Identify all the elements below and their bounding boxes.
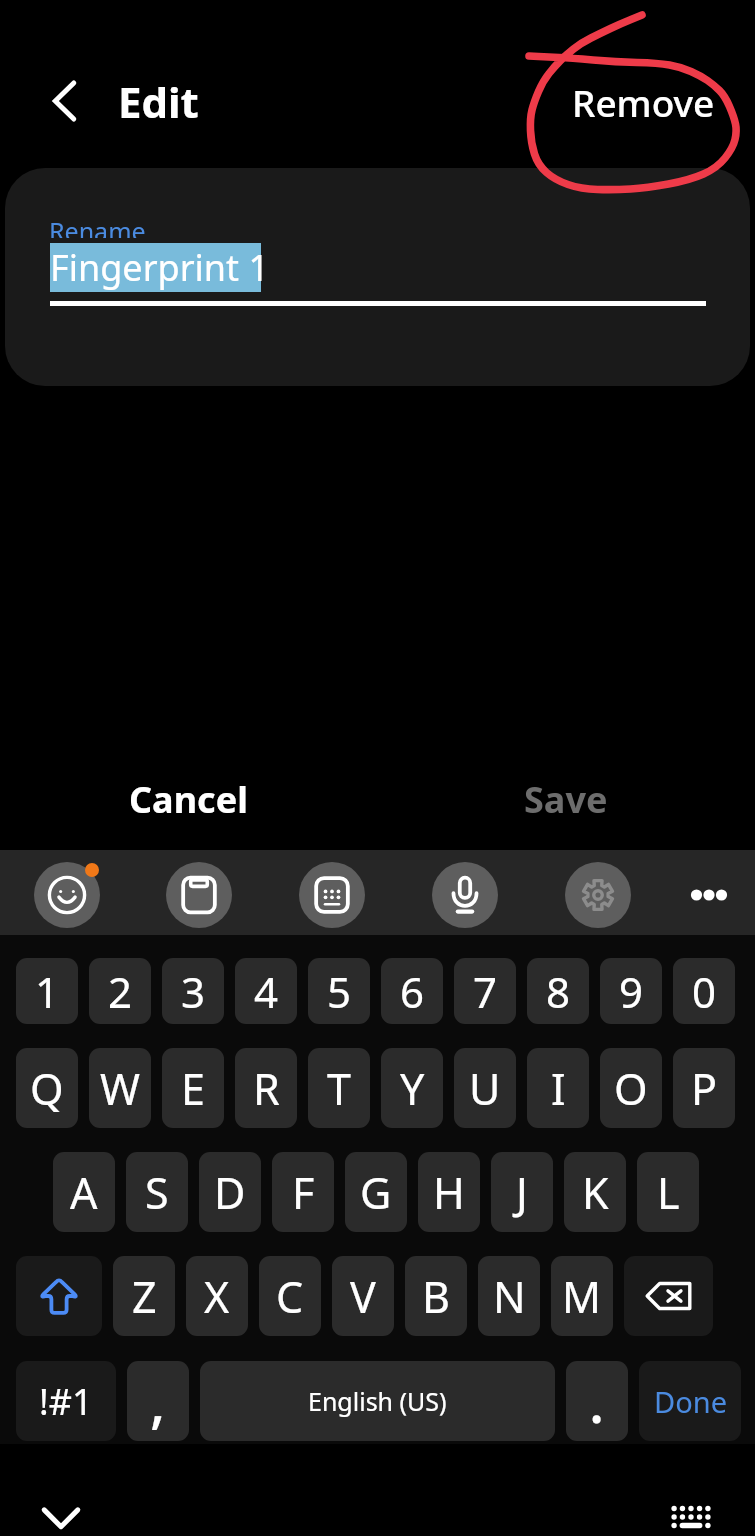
button[interactable]: D [199, 1152, 261, 1232]
button[interactable]: W [89, 1048, 151, 1128]
button[interactable]: I [527, 1048, 589, 1128]
button[interactable]: Switch keyboard [672, 1506, 710, 1536]
staticText: A [70, 1163, 98, 1222]
staticText: Y [400, 1059, 425, 1118]
button[interactable]: 8 [527, 958, 589, 1024]
button[interactable]: N [478, 1256, 540, 1336]
button[interactable]: K [564, 1152, 626, 1232]
button[interactable]: Save [377, 758, 755, 840]
button[interactable]: E [162, 1048, 224, 1128]
button[interactable]: S [126, 1152, 188, 1232]
button[interactable]: V [332, 1256, 394, 1336]
button[interactable]: X [186, 1256, 248, 1336]
staticText: U [469, 1059, 501, 1118]
staticText: B [422, 1267, 450, 1326]
staticText: 9 [619, 963, 644, 1020]
staticText: 0 [692, 963, 717, 1020]
button[interactable]: Q [16, 1048, 78, 1128]
button[interactable]: 0 [673, 958, 735, 1024]
staticText: P [691, 1059, 718, 1118]
staticText: 5 [327, 963, 352, 1020]
button[interactable]: 5 [308, 958, 370, 1024]
button[interactable]: H [418, 1152, 480, 1232]
staticText: E [181, 1059, 205, 1118]
button[interactable]: B [405, 1256, 467, 1336]
staticText: . [589, 1363, 605, 1439]
button[interactable]: A [53, 1152, 115, 1232]
button[interactable]: . [566, 1361, 628, 1441]
button[interactable]: Back [43, 79, 87, 123]
staticText: 6 [400, 963, 425, 1020]
staticText: L [657, 1163, 680, 1222]
staticText: Edit [118, 73, 199, 130]
button[interactable]: Clipboard [166, 862, 232, 928]
button[interactable]: Emoji [34, 862, 100, 928]
button[interactable]: 4 [235, 958, 297, 1024]
button[interactable]: T [308, 1048, 370, 1128]
button[interactable]: Hide keyboard [34, 1490, 88, 1536]
button[interactable]: G [345, 1152, 407, 1232]
button[interactable]: 3 [162, 958, 224, 1024]
button[interactable]: Done [639, 1361, 741, 1441]
staticText: Rename [49, 214, 146, 238]
button[interactable]: P [673, 1048, 735, 1128]
staticText: Cancel [129, 775, 248, 824]
button[interactable]: J [491, 1152, 553, 1232]
staticText: Save [524, 775, 608, 824]
button[interactable]: Z [113, 1256, 175, 1336]
staticText: 7 [473, 963, 498, 1020]
button[interactable]: Shift [16, 1256, 102, 1336]
button[interactable]: O [600, 1048, 662, 1128]
staticText: Q [30, 1059, 64, 1118]
staticText: 8 [546, 963, 571, 1020]
staticText: K [582, 1163, 609, 1222]
button[interactable]: 6 [381, 958, 443, 1024]
button[interactable]: C [259, 1256, 321, 1336]
staticText: S [145, 1163, 169, 1222]
staticText: 4 [254, 963, 279, 1020]
staticText: H [433, 1163, 465, 1222]
button[interactable]: !#1 [16, 1361, 116, 1441]
staticText: V [350, 1267, 376, 1326]
staticText: 3 [181, 963, 206, 1020]
button[interactable]: U [454, 1048, 516, 1128]
staticText: X [204, 1267, 230, 1326]
button[interactable]: , [127, 1361, 189, 1441]
staticText: Done [654, 1382, 727, 1421]
staticText: English (US) [308, 1384, 447, 1418]
button[interactable]: 1 [16, 958, 78, 1024]
button[interactable]: M [551, 1256, 613, 1336]
button[interactable]: Y [381, 1048, 443, 1128]
button[interactable]: 2 [89, 958, 151, 1024]
staticText: Remove [572, 77, 715, 127]
button[interactable]: Cancel [0, 758, 377, 840]
staticText: T [327, 1059, 351, 1118]
button[interactable]: Keyboard settings [565, 862, 631, 928]
staticText: O [614, 1059, 648, 1118]
staticText: F [292, 1163, 315, 1222]
button[interactable]: Text editing [299, 862, 365, 928]
staticText: , [150, 1363, 166, 1439]
staticText: 2 [108, 963, 133, 1020]
staticText: N [493, 1267, 526, 1326]
button[interactable]: L [637, 1152, 699, 1232]
button[interactable]: F [272, 1152, 334, 1232]
staticText: I [551, 1059, 566, 1118]
staticText: C [276, 1267, 304, 1326]
button[interactable]: Voice input [432, 862, 498, 928]
button[interactable]: Remove [552, 62, 734, 142]
staticText: 1 [35, 963, 60, 1020]
staticText: Fingerprint 1 [50, 243, 270, 292]
button[interactable]: R [235, 1048, 297, 1128]
button[interactable]: More options [676, 862, 742, 928]
staticText: J [516, 1163, 528, 1222]
staticText: W [100, 1059, 140, 1118]
staticText: D [214, 1163, 246, 1222]
staticText: G [360, 1163, 392, 1222]
button[interactable]: 9 [600, 958, 662, 1024]
button[interactable]: Backspace [624, 1256, 713, 1336]
button[interactable]: 7 [454, 958, 516, 1024]
staticText: R [253, 1059, 280, 1118]
button[interactable]: English (US) [200, 1361, 555, 1441]
staticText: M [562, 1267, 602, 1326]
